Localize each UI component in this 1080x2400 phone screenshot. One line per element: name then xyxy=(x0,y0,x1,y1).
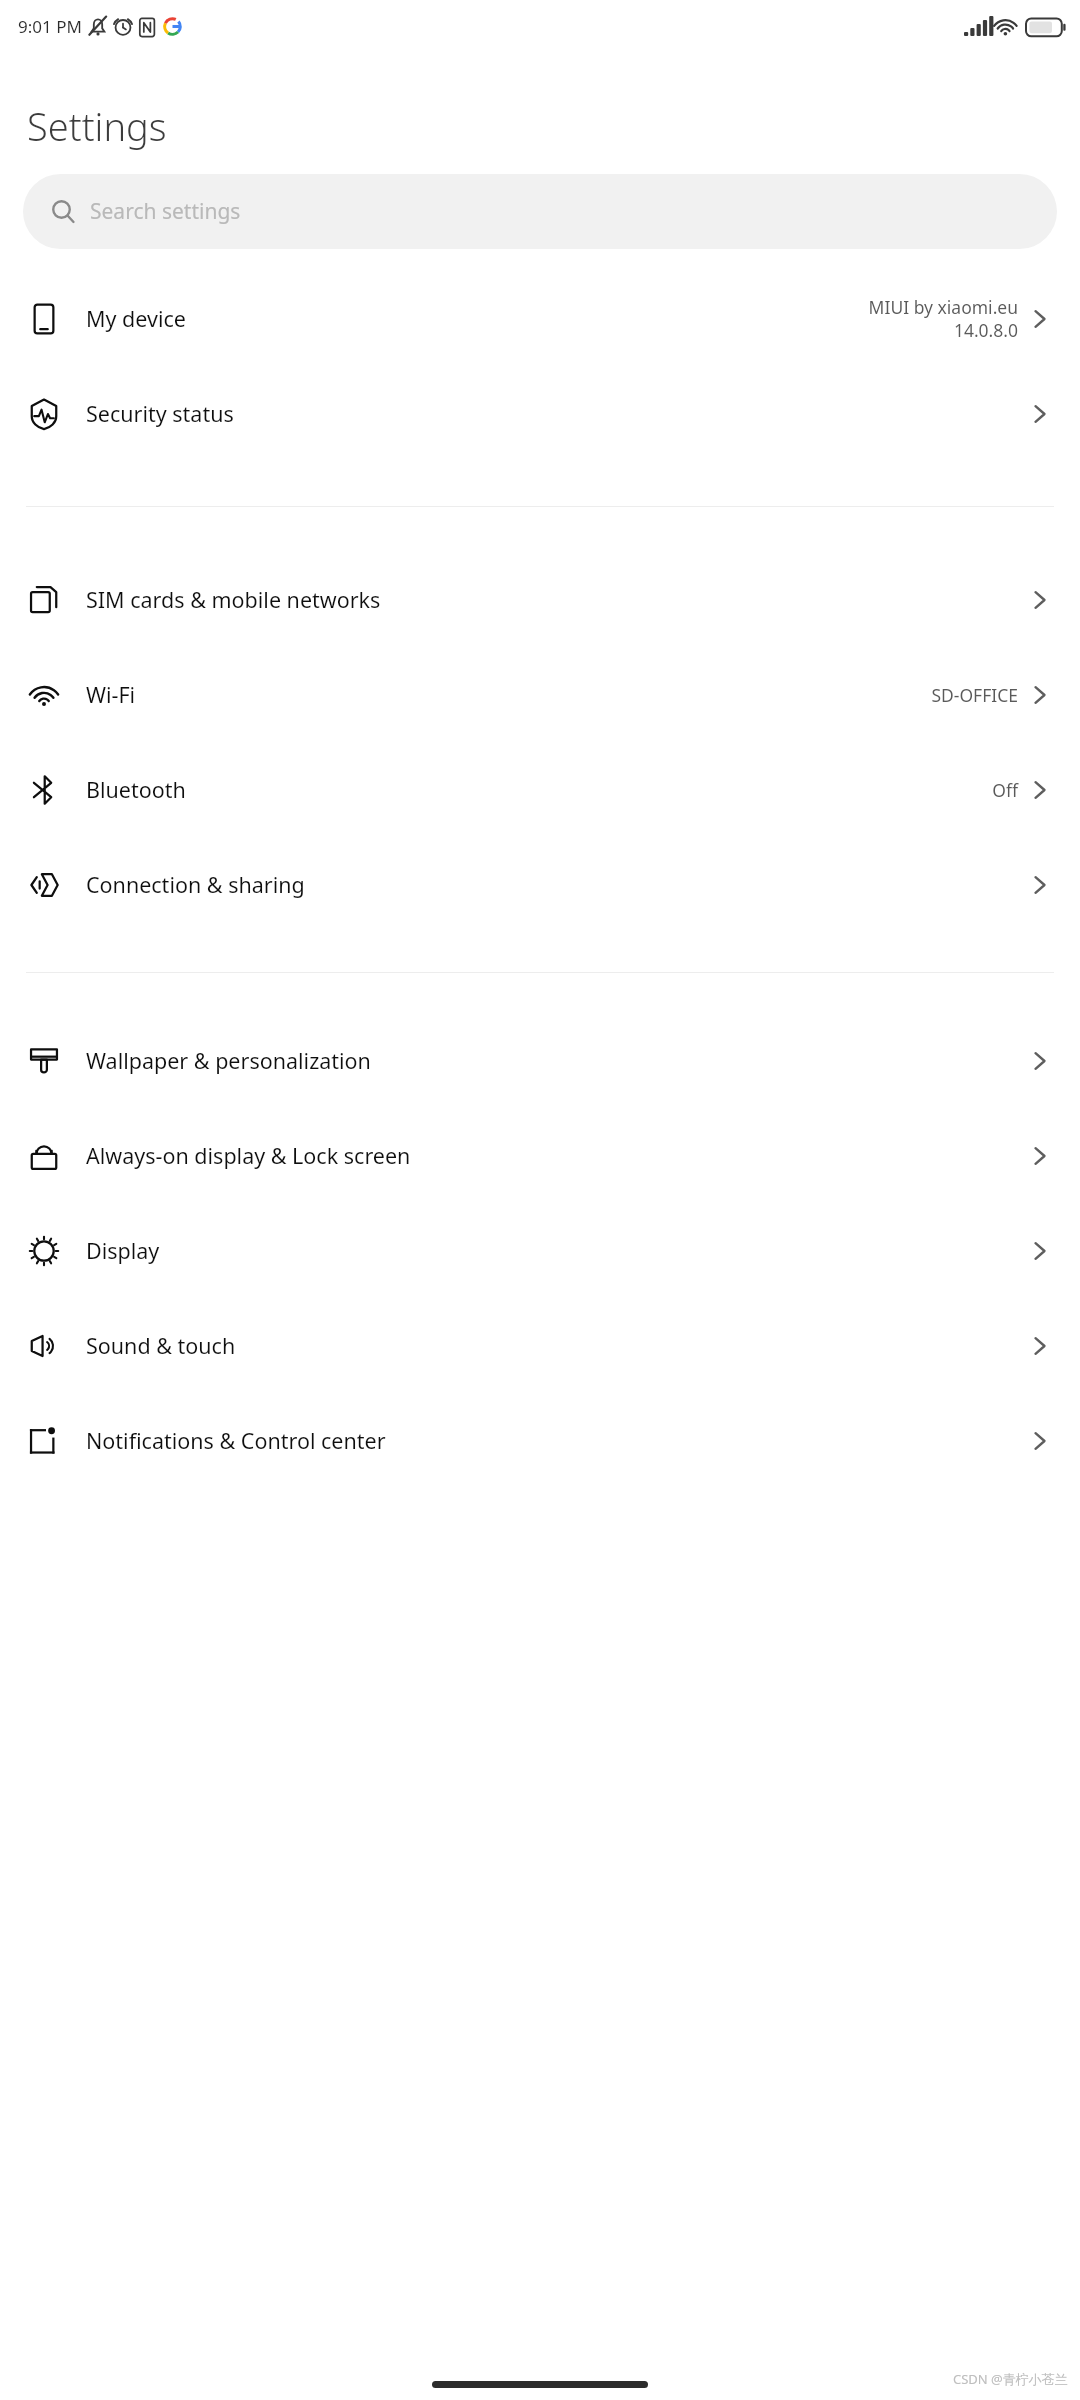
staticText: Settings xyxy=(27,100,167,152)
staticText: Wi-Fi xyxy=(86,680,931,709)
staticText: Off xyxy=(992,778,1018,802)
staticText: CSDN @青柠小苍兰 xyxy=(953,2370,1068,2388)
staticText: Notifications & Control center xyxy=(86,1426,1026,1455)
staticText: My device xyxy=(86,304,868,333)
button[interactable]: Sound & touch xyxy=(0,1298,1080,1393)
staticText: Search settings xyxy=(90,197,241,226)
staticText: MIUI by xiaomi.eu 14.0.8.0 xyxy=(868,295,1018,342)
staticText: SIM cards & mobile networks xyxy=(86,585,1026,614)
staticText: SD-OFFICE xyxy=(931,683,1018,707)
button[interactable]: Connection & sharing xyxy=(0,837,1080,932)
button[interactable]: Search settings xyxy=(23,174,1057,249)
button[interactable]: Wi-Fi xyxy=(0,647,1080,742)
staticText: Always-on display & Lock screen xyxy=(86,1141,1026,1170)
button[interactable]: Display xyxy=(0,1203,1080,1298)
staticText: Display xyxy=(86,1236,1026,1265)
staticText: Sound & touch xyxy=(86,1331,1026,1360)
button[interactable]: Wallpaper & personalization xyxy=(0,1013,1080,1108)
button[interactable]: Security status xyxy=(0,366,1080,461)
staticText: Connection & sharing xyxy=(86,870,1026,899)
button[interactable]: SIM cards & mobile networks xyxy=(0,552,1080,647)
staticText: Wallpaper & personalization xyxy=(86,1046,1026,1075)
button[interactable]: Bluetooth xyxy=(0,742,1080,837)
staticText: Bluetooth xyxy=(86,775,992,804)
staticText: 9:01 PM xyxy=(18,15,82,38)
staticText: Security status xyxy=(86,399,1026,428)
button[interactable]: Always-on display & Lock screen xyxy=(0,1108,1080,1203)
button[interactable]: My device xyxy=(0,271,1080,366)
button[interactable]: Notifications & Control center xyxy=(0,1393,1080,1488)
